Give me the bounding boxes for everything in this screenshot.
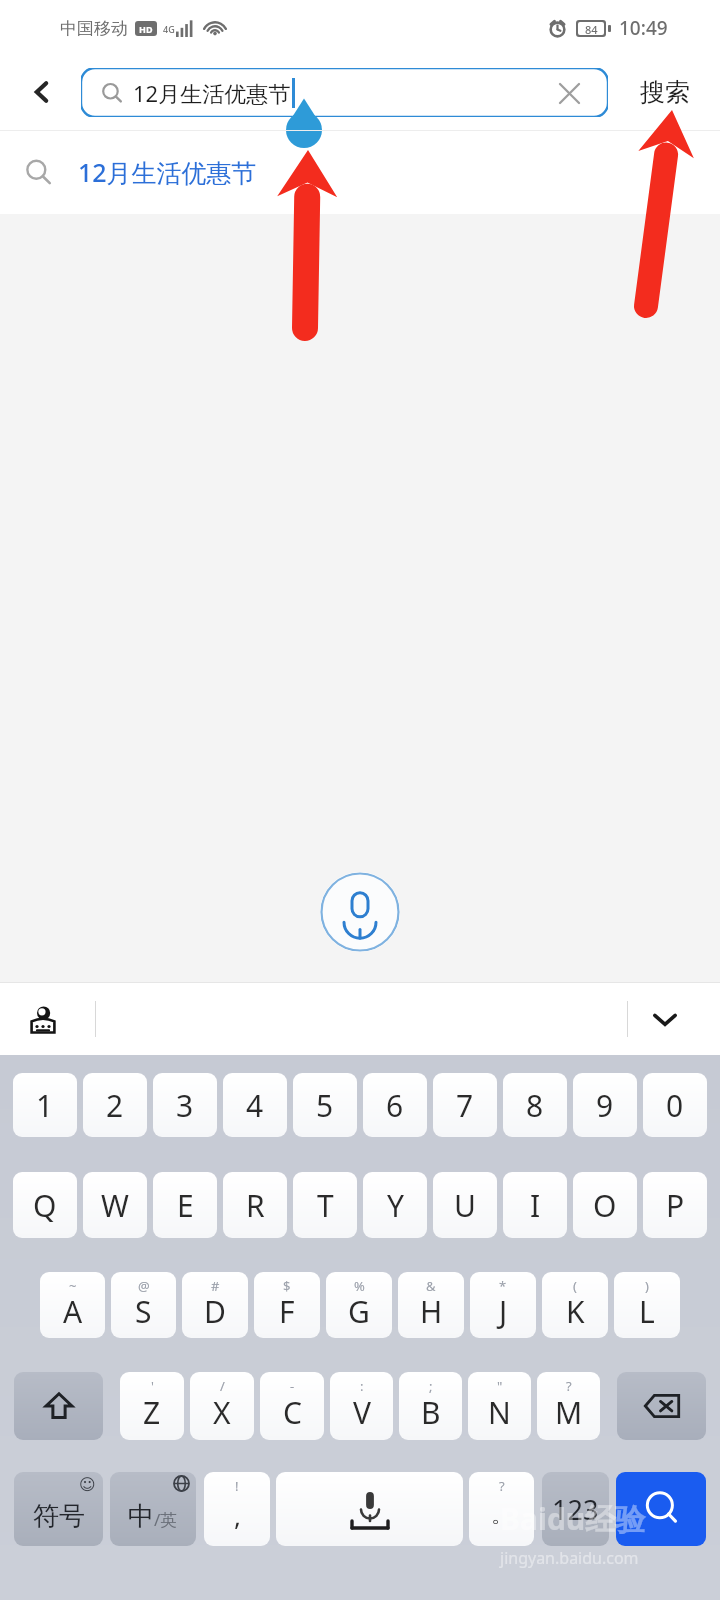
staticText: " <box>497 1377 503 1395</box>
staticText: T <box>317 1185 334 1226</box>
button[interactable]: Search <box>616 1472 706 1546</box>
staticText: Q <box>33 1185 57 1226</box>
button[interactable]: Backspace <box>617 1372 706 1440</box>
staticText: @ <box>138 1277 150 1295</box>
staticText: / <box>220 1377 225 1395</box>
staticText: 1 <box>36 1085 54 1126</box>
button[interactable]: @ <box>111 1272 176 1338</box>
staticText: L <box>639 1291 655 1332</box>
staticText: # <box>211 1277 220 1295</box>
button[interactable]: Shift <box>14 1372 103 1440</box>
staticText: K <box>566 1291 585 1332</box>
button[interactable]: ? <box>537 1372 600 1440</box>
staticText: 。 <box>491 1501 513 1529</box>
button[interactable]: & <box>398 1272 464 1338</box>
button[interactable]: 12月生活优惠节 <box>0 130 720 214</box>
staticText: A <box>63 1291 83 1332</box>
button[interactable]: 7 <box>433 1073 497 1137</box>
button[interactable]: P <box>643 1172 707 1238</box>
staticText: F <box>279 1291 295 1332</box>
staticText: 符号 <box>33 1500 85 1533</box>
staticText: 9 <box>596 1085 614 1126</box>
staticText: ? <box>499 1477 505 1495</box>
button[interactable]: * <box>470 1272 536 1338</box>
button[interactable]: Voice input <box>320 872 400 952</box>
button[interactable]: Clear text <box>552 76 586 110</box>
button[interactable]: ! <box>204 1472 270 1546</box>
button[interactable]: I <box>503 1172 567 1238</box>
button[interactable]: 1 <box>13 1073 77 1137</box>
button[interactable]: W <box>83 1172 147 1238</box>
button[interactable]: Q <box>13 1172 77 1238</box>
staticText: B <box>421 1392 441 1433</box>
button[interactable]: 12月生活优惠节 <box>81 68 608 117</box>
staticText: 8 <box>526 1085 544 1126</box>
button[interactable]: 5 <box>293 1073 357 1137</box>
button[interactable]: Space <box>276 1472 463 1546</box>
button[interactable]: 4 <box>223 1073 287 1137</box>
button[interactable]: $ <box>254 1272 320 1338</box>
button[interactable]: 中 <box>110 1472 196 1546</box>
button[interactable]: 0 <box>643 1073 707 1137</box>
button[interactable]: Hide keyboard <box>638 992 692 1046</box>
staticText: N <box>488 1392 511 1433</box>
staticText: HD <box>139 23 153 35</box>
button[interactable]: # <box>182 1272 248 1338</box>
staticText: W <box>101 1185 129 1226</box>
staticText: & <box>426 1277 436 1295</box>
button[interactable]: E <box>153 1172 217 1238</box>
button[interactable]: 9 <box>573 1073 637 1137</box>
staticText: 12月生活优惠节 <box>133 78 291 108</box>
button[interactable]: ☺ <box>14 1472 103 1546</box>
staticText: D <box>204 1291 226 1332</box>
button[interactable]: ( <box>542 1272 608 1338</box>
staticText: 5 <box>316 1085 334 1126</box>
staticText: * <box>499 1277 507 1295</box>
button[interactable]: ~ <box>40 1272 105 1338</box>
staticText: 123 <box>552 1491 599 1528</box>
staticText: R <box>246 1185 265 1226</box>
button[interactable]: ? <box>469 1472 534 1546</box>
button[interactable]: O <box>573 1172 637 1238</box>
button[interactable]: T <box>293 1172 357 1238</box>
button[interactable]: 8 <box>503 1073 567 1137</box>
staticText: , <box>234 1498 241 1533</box>
button[interactable]: Switch input language <box>16 992 70 1046</box>
button[interactable]: / <box>190 1372 254 1440</box>
staticText: V <box>353 1392 371 1433</box>
staticText: 2 <box>106 1085 124 1126</box>
button[interactable]: % <box>326 1272 392 1338</box>
staticText: - <box>290 1377 295 1395</box>
staticText: 10:49 <box>619 15 668 41</box>
staticText: jingyan.baidu.com <box>500 1547 639 1569</box>
staticText: H <box>420 1291 443 1332</box>
staticText: 12月生活优惠节 <box>78 155 257 189</box>
staticText: M <box>555 1392 583 1433</box>
staticText: G <box>348 1291 370 1332</box>
button[interactable]: R <box>223 1172 287 1238</box>
button[interactable]: U <box>433 1172 497 1238</box>
staticText: Z <box>143 1392 161 1433</box>
staticText: ; <box>429 1377 433 1395</box>
button[interactable]: 6 <box>363 1073 427 1137</box>
button[interactable]: " <box>468 1372 531 1440</box>
staticText: O <box>593 1185 617 1226</box>
staticText: C <box>283 1392 302 1433</box>
button[interactable]: 搜索 <box>624 68 706 117</box>
button[interactable]: - <box>260 1372 324 1440</box>
button[interactable]: 2 <box>83 1073 147 1137</box>
staticText: 7 <box>456 1085 474 1126</box>
staticText: Baidu经验 <box>500 1498 646 1539</box>
button[interactable]: Y <box>363 1172 427 1238</box>
button[interactable]: Back <box>18 68 66 116</box>
button[interactable]: ; <box>399 1372 462 1440</box>
staticText: ) <box>645 1277 649 1295</box>
button[interactable]: : <box>330 1372 393 1440</box>
staticText: I <box>530 1185 541 1226</box>
button[interactable]: ) <box>614 1272 680 1338</box>
button[interactable]: 3 <box>153 1073 217 1137</box>
staticText: $ <box>283 1277 291 1295</box>
button[interactable]: ' <box>120 1372 184 1440</box>
staticText: S <box>135 1291 152 1332</box>
button[interactable]: 123 <box>542 1472 609 1546</box>
